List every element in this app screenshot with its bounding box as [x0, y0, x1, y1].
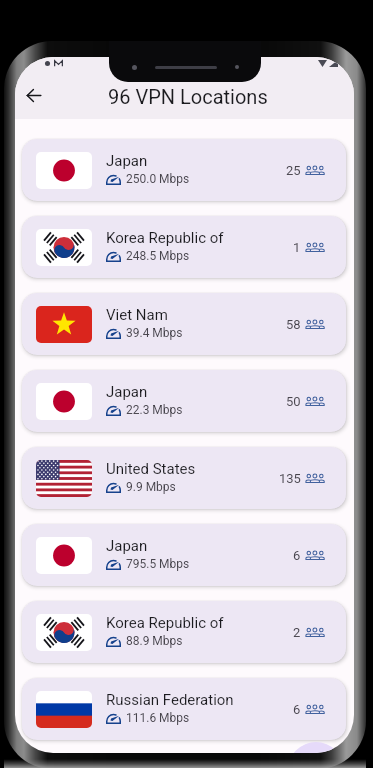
button[interactable]: Japan [22, 370, 346, 432]
staticText: 39.4 Mbps [126, 326, 183, 340]
staticText: Japan [106, 152, 148, 170]
button[interactable]: United States [22, 447, 346, 509]
staticText: 6 [293, 702, 301, 717]
button[interactable]: Add [288, 742, 344, 753]
staticText: 111.6 Mbps [126, 711, 190, 725]
staticText: 96 VPN Locations [108, 85, 268, 108]
button[interactable]: Korea Republic of [22, 216, 346, 278]
button[interactable]: Viet Nam [22, 293, 346, 355]
staticText: 795.5 Mbps [126, 557, 190, 571]
staticText: Japan [106, 537, 148, 555]
staticText: 248.5 Mbps [126, 249, 190, 263]
staticText: 2 [293, 625, 301, 640]
staticText: 88.9 Mbps [126, 634, 183, 648]
staticText: 6 [293, 548, 301, 563]
button[interactable]: Japan [22, 524, 346, 586]
staticText: 25 [286, 163, 301, 178]
staticText: 135 [279, 471, 301, 486]
staticText: Korea Republic of [106, 229, 224, 247]
staticText: Viet Nam [106, 306, 168, 324]
button[interactable]: Back [17, 78, 51, 112]
staticText: 1 [293, 240, 301, 255]
staticText: 250.0 Mbps [126, 172, 190, 186]
staticText: Korea Republic of [106, 614, 224, 632]
button[interactable]: Korea Republic of [22, 601, 346, 663]
staticText: 9.9 Mbps [126, 480, 176, 494]
button[interactable]: Russian Federation [22, 678, 346, 740]
staticText: United States [106, 460, 196, 478]
staticText: Japan [106, 383, 148, 401]
staticText: 22.3 Mbps [126, 403, 183, 417]
button[interactable]: Japan [22, 139, 346, 201]
staticText: 50 [286, 394, 301, 409]
staticText: 58 [286, 317, 301, 332]
staticText: Russian Federation [106, 691, 234, 709]
